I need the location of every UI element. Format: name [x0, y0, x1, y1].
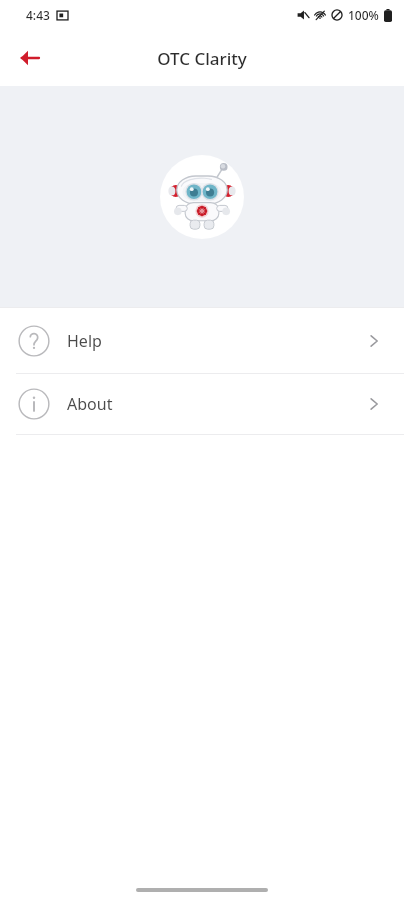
- button[interactable]: Back: [10, 38, 50, 78]
- staticText: 100%: [348, 7, 379, 23]
- button[interactable]: About: [0, 374, 404, 434]
- staticText: Help: [67, 330, 102, 352]
- staticText: OTC Clarity: [157, 47, 247, 70]
- staticText: 4:43: [26, 7, 50, 23]
- button[interactable]: Help: [0, 308, 404, 373]
- staticText: About: [67, 393, 113, 415]
